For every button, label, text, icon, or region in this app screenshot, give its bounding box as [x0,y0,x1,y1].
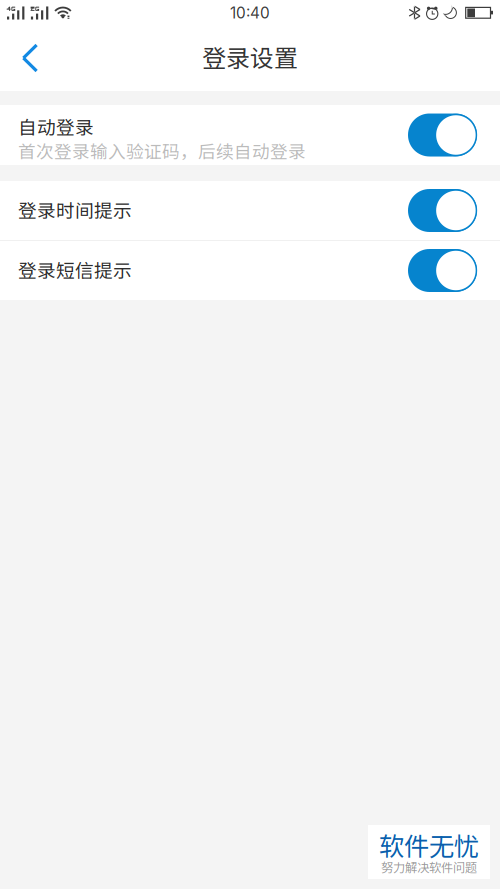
button[interactable]: 返回 [0,30,62,91]
staticText: 登录时间提示 [18,196,132,223]
staticText: 努力解决软件问题 [381,858,477,876]
staticText: 软件无忧 [379,826,479,863]
button[interactable]: 登录短信提示 [0,241,500,300]
staticText: 登录短信提示 [18,256,132,283]
button[interactable]: 自动登录 [0,105,500,165]
staticText: 登录设置 [202,39,298,74]
button[interactable]: 登录时间提示 [0,181,500,240]
staticText: 10:40 [230,3,270,22]
staticText: 自动登录 [18,113,94,140]
staticText: 首次登录输入验证码，后续自动登录 [18,138,306,163]
